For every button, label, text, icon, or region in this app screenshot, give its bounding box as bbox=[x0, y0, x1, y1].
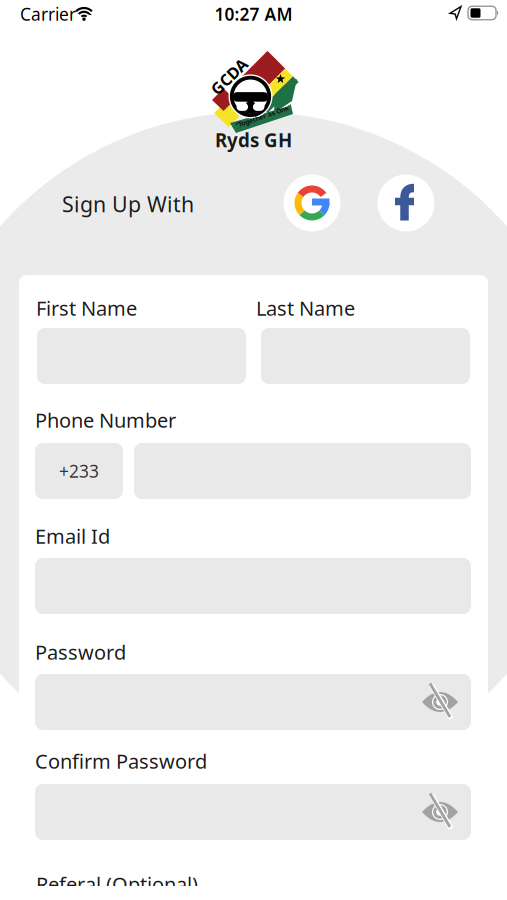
button[interactable]: Sign up with Google bbox=[283, 174, 340, 231]
button[interactable]: Show password bbox=[421, 688, 459, 716]
button[interactable]: Show confirm password bbox=[421, 798, 459, 826]
button[interactable]: Country code +233 bbox=[35, 443, 123, 499]
button[interactable]: Sign up with Facebook bbox=[377, 174, 434, 231]
staticText: Sign Up With bbox=[62, 190, 194, 218]
staticText: “Together as One” bbox=[234, 112, 293, 120]
staticText: Phone Number bbox=[35, 407, 176, 433]
staticText: Email Id bbox=[35, 523, 110, 549]
staticText: Confirm Password bbox=[35, 748, 207, 774]
staticText: Ryds GH bbox=[215, 128, 292, 152]
staticText: GCDA bbox=[207, 66, 251, 87]
button[interactable]: Password bbox=[35, 674, 471, 730]
staticText: Referal (Optional) bbox=[36, 871, 198, 897]
staticText: 10:27 AM bbox=[214, 2, 292, 25]
staticText: Last Name bbox=[256, 295, 355, 321]
staticText: First Name bbox=[36, 295, 137, 321]
button[interactable]: Confirm Password bbox=[35, 784, 471, 840]
staticText: Carrier bbox=[20, 2, 76, 25]
staticText: Password bbox=[35, 639, 126, 665]
staticText: +233 bbox=[59, 459, 99, 482]
